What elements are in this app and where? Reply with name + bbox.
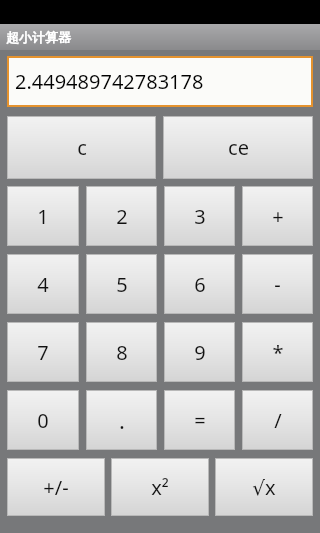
staticText: / xyxy=(274,407,282,434)
staticText: 9 xyxy=(194,339,206,366)
staticText: 2 xyxy=(116,203,128,230)
staticText: = xyxy=(194,407,206,434)
button[interactable]: 6 xyxy=(164,254,235,314)
staticText: 6 xyxy=(194,271,206,298)
button[interactable]: 7 xyxy=(7,322,79,382)
staticText: - xyxy=(274,271,281,298)
button[interactable]: + xyxy=(242,186,313,246)
button[interactable]: - xyxy=(242,254,313,314)
button[interactable]: 9 xyxy=(164,322,235,382)
button[interactable]: +/- xyxy=(7,458,105,516)
button[interactable]: 3 xyxy=(164,186,235,246)
staticText: 1 xyxy=(37,203,49,230)
staticText: 3 xyxy=(194,203,206,230)
staticText: * xyxy=(272,339,284,366)
button[interactable]: 1 xyxy=(7,186,79,246)
button[interactable]: ce xyxy=(163,116,313,179)
button[interactable]: 2 xyxy=(86,186,157,246)
button[interactable]: 0 xyxy=(7,390,79,450)
staticText: + xyxy=(272,203,284,230)
staticText: 4 xyxy=(37,271,49,298)
button[interactable]: 5 xyxy=(86,254,157,314)
button[interactable]: = xyxy=(164,390,235,450)
button[interactable]: . xyxy=(86,390,157,450)
staticText: . xyxy=(119,405,125,435)
button[interactable]: / xyxy=(242,390,313,450)
staticText: 5 xyxy=(116,271,128,298)
staticText: 超小计算器 xyxy=(6,29,71,45)
button[interactable]: c xyxy=(7,116,156,179)
staticText: √x xyxy=(252,474,276,501)
staticText: c xyxy=(77,134,87,161)
button[interactable]: 4 xyxy=(7,254,79,314)
button[interactable]: x² xyxy=(111,458,209,516)
staticText: 8 xyxy=(116,339,128,366)
staticText: 0 xyxy=(37,407,49,434)
staticText: 2.449489742783178 xyxy=(15,68,204,95)
staticText: 7 xyxy=(37,339,49,366)
button[interactable]: * xyxy=(242,322,313,382)
button[interactable]: 8 xyxy=(86,322,157,382)
staticText: x² xyxy=(151,474,169,501)
staticText: ce xyxy=(228,134,249,161)
staticText: +/- xyxy=(43,474,69,501)
button[interactable]: √x xyxy=(215,458,313,516)
